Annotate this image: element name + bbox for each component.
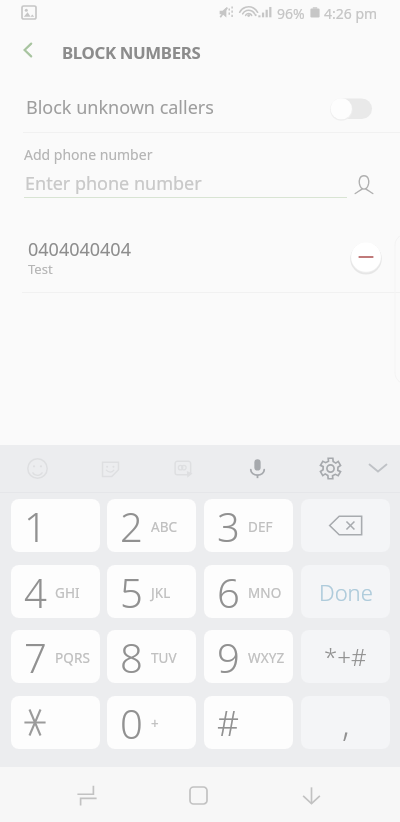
button[interactable]: Voice input	[234, 445, 280, 491]
button[interactable]: Remove number	[348, 239, 384, 275]
staticText: JKL	[151, 584, 171, 602]
button[interactable]: #	[204, 696, 293, 749]
button[interactable]: Open contacts	[348, 168, 380, 200]
staticText: 96%	[277, 4, 305, 23]
staticText: #	[217, 700, 239, 746]
button[interactable]: 5	[107, 565, 196, 618]
staticText: Done	[319, 577, 373, 607]
staticText: DEF	[248, 518, 273, 536]
staticText: ,	[342, 700, 350, 746]
staticText: 3	[217, 499, 240, 552]
staticText: 1	[24, 499, 47, 552]
button[interactable]: ,	[301, 696, 390, 749]
staticText: 7	[24, 630, 47, 683]
staticText: GHI	[55, 584, 80, 602]
staticText: 5	[120, 565, 143, 618]
button[interactable]: Home	[176, 773, 221, 818]
staticText: MNO	[248, 584, 282, 602]
button[interactable]: 4	[11, 565, 100, 618]
button[interactable]: 0404040404	[0, 226, 400, 292]
staticText: Add phone number	[24, 145, 153, 164]
button[interactable]: Navigate up	[10, 32, 46, 68]
staticText: 9	[217, 630, 240, 683]
button[interactable]: Back	[289, 773, 334, 818]
button[interactable]: 7	[11, 630, 100, 683]
staticText: PQRS	[55, 649, 90, 667]
staticText: Test	[28, 260, 53, 278]
button[interactable]: 2	[107, 499, 196, 552]
staticText: +	[151, 715, 159, 733]
staticText: *+#	[324, 640, 367, 673]
staticText: 6	[217, 565, 240, 618]
button[interactable]: 8	[107, 630, 196, 683]
staticText: 4	[24, 565, 47, 618]
button[interactable]: Done	[301, 565, 390, 618]
staticText: 4:26 pm	[324, 4, 378, 23]
staticText: 8	[120, 630, 143, 683]
staticText: 0	[120, 696, 143, 749]
button[interactable]: Hide keyboard	[356, 445, 400, 491]
button[interactable]: Block unknown callers	[0, 84, 400, 132]
staticText: Block unknown callers	[26, 95, 214, 120]
button[interactable]: 1	[11, 499, 100, 552]
staticText: Enter phone number	[25, 171, 202, 196]
staticText: WXYZ	[248, 649, 285, 667]
button[interactable]: Keyboard settings	[307, 445, 353, 491]
staticText: TUV	[151, 649, 177, 667]
staticText: 0404040404	[28, 237, 131, 262]
staticText: ABC	[151, 518, 178, 536]
staticText: BLOCK NUMBERS	[62, 41, 201, 64]
button[interactable]: Backspace	[301, 499, 390, 552]
button[interactable]	[11, 696, 100, 749]
button[interactable]: *+#	[301, 630, 390, 683]
button[interactable]: 0	[107, 696, 196, 749]
button[interactable]: 9	[204, 630, 293, 683]
button[interactable]: 6	[204, 565, 293, 618]
staticText: 2	[120, 499, 143, 552]
button[interactable]: Recent apps	[64, 773, 109, 818]
button[interactable]: 3	[204, 499, 293, 552]
